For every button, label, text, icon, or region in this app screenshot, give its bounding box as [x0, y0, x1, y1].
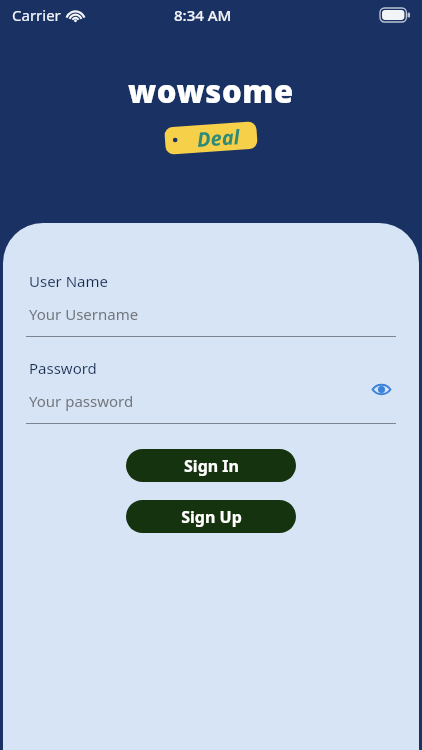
staticText: Carrier — [12, 5, 61, 25]
button[interactable]: Show password — [366, 378, 396, 400]
staticText: Sign In — [184, 455, 239, 477]
button[interactable]: Sign Up — [126, 500, 296, 533]
staticText: User Name — [29, 271, 109, 291]
staticText: wowsome — [128, 70, 294, 112]
staticText: Your password — [29, 391, 134, 411]
button[interactable]: Sign In — [126, 449, 296, 482]
staticText: Your Username — [29, 304, 139, 324]
staticText: Deal — [196, 123, 241, 153]
staticText: 8:34 AM — [174, 5, 232, 25]
staticText: Sign Up — [181, 506, 242, 528]
staticText: Password — [29, 358, 97, 378]
